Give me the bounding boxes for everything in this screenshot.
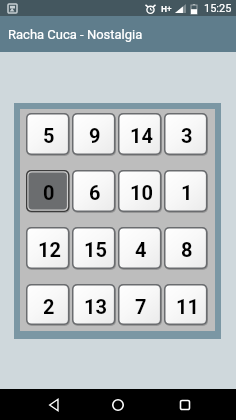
button[interactable]: 6 (72, 170, 116, 213)
button[interactable]: 13 (72, 284, 116, 326)
button[interactable]: 9 (72, 113, 116, 156)
button[interactable]: 7 (118, 284, 162, 326)
button[interactable]: 1 (164, 170, 208, 213)
button[interactable]: 5 (26, 113, 70, 156)
staticText: 10 (130, 181, 153, 204)
staticText: 5 (43, 124, 55, 147)
button[interactable]: 3 (164, 113, 208, 156)
staticText: 0 (43, 181, 55, 204)
staticText: 3 (181, 124, 193, 147)
staticText: 14 (130, 124, 153, 147)
staticText: 15:25 (204, 2, 232, 15)
staticText: H+ (161, 3, 172, 14)
button[interactable]: 8 (164, 227, 208, 270)
button[interactable]: Home (109, 396, 127, 414)
staticText: 1 (181, 181, 193, 204)
staticText: 9 (89, 124, 101, 147)
staticText: 4 (135, 238, 147, 261)
button[interactable]: 15 (72, 227, 116, 270)
button[interactable]: Recent apps (176, 396, 194, 414)
button[interactable]: 14 (118, 113, 162, 156)
staticText: 13 (84, 295, 107, 318)
button[interactable]: 2 (26, 284, 70, 326)
button[interactable]: Back (45, 396, 63, 414)
staticText: 11 (176, 295, 199, 318)
button[interactable]: Racha Cuca - Nostalgia (0, 16, 236, 52)
button[interactable]: 12 (26, 227, 70, 270)
staticText: 8 (181, 238, 193, 261)
staticText: 15 (84, 238, 107, 261)
staticText: 12 (38, 238, 61, 261)
staticText: 2 (43, 295, 55, 318)
staticText: 6 (89, 181, 101, 204)
button[interactable]: 11 (164, 284, 208, 326)
button[interactable]: 4 (118, 227, 162, 270)
button[interactable]: 0 (26, 170, 70, 213)
staticText: 7 (135, 295, 147, 318)
button[interactable]: 10 (118, 170, 162, 213)
staticText: Racha Cuca - Nostalgia (8, 27, 143, 42)
